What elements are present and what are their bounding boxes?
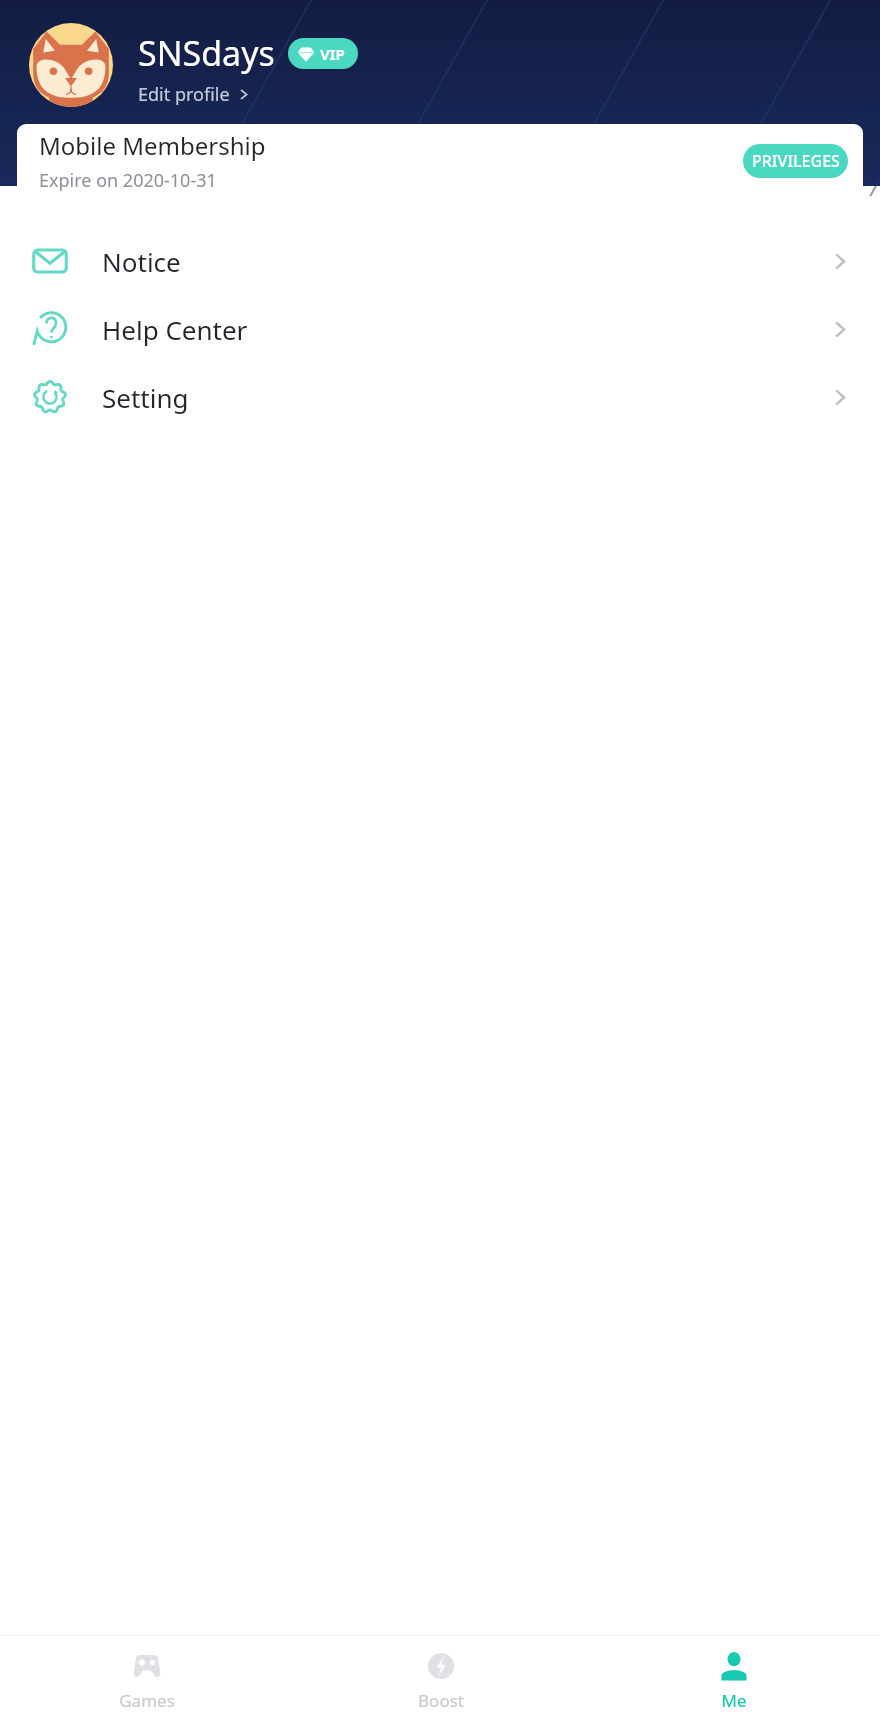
staticText: SNSdays — [138, 30, 275, 76]
staticText: Expire on 2020-10-31 — [39, 168, 217, 193]
staticText: Me — [721, 1689, 747, 1712]
button[interactable]: Setting — [0, 363, 880, 431]
staticText: Edit profile — [138, 82, 230, 107]
staticText: Help Center — [102, 312, 829, 347]
other: Games — [130, 1649, 164, 1683]
button[interactable]: VIP — [288, 38, 358, 69]
staticText: Mobile Membership — [39, 129, 266, 162]
staticText: Games — [119, 1689, 175, 1712]
staticText: PRIVILEGES — [752, 150, 840, 172]
button[interactable]: PRIVILEGES — [743, 144, 848, 178]
other: Me — [717, 1649, 751, 1683]
button[interactable]: Me — [587, 1636, 880, 1712]
staticText: VIP — [320, 44, 345, 64]
button[interactable]: Edit profile — [138, 82, 250, 107]
staticText: Notice — [102, 244, 829, 279]
button[interactable]: Profile picture — [29, 23, 113, 107]
button[interactable]: Notice — [0, 227, 880, 295]
button[interactable]: Help Center — [0, 295, 880, 363]
other: Boost — [424, 1649, 458, 1683]
button[interactable]: Boost — [294, 1636, 587, 1712]
button[interactable]: Mobile Membership — [17, 124, 863, 197]
staticText: Boost — [418, 1689, 464, 1712]
button[interactable]: Games — [0, 1636, 294, 1712]
staticText: Setting — [102, 380, 829, 415]
